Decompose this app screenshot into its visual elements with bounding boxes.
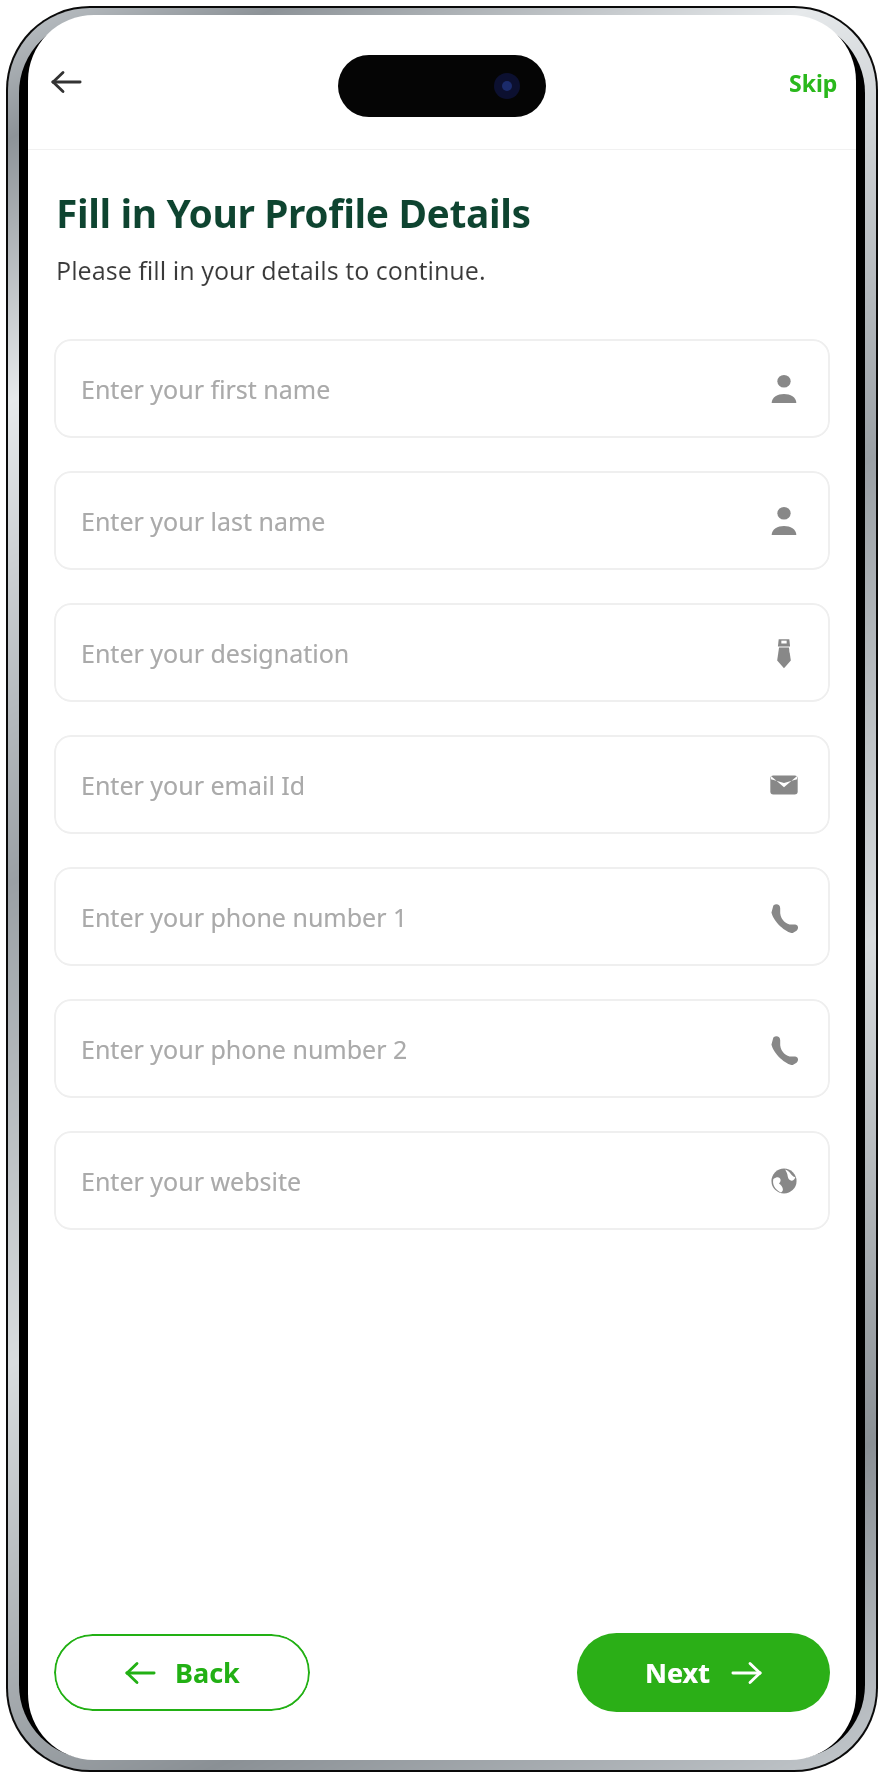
staticText: Skip xyxy=(789,67,838,98)
button[interactable]: Enter your first name xyxy=(54,339,830,438)
button[interactable]: Skip xyxy=(779,61,848,104)
button[interactable]: Back xyxy=(38,54,94,110)
staticText: Enter your phone number 2 xyxy=(81,1032,765,1066)
button[interactable]: Back xyxy=(54,1634,310,1711)
staticText: Enter your first name xyxy=(81,372,765,406)
button[interactable]: Next xyxy=(577,1633,830,1712)
staticText: Enter your designation xyxy=(81,636,765,670)
staticText: Enter your phone number 1 xyxy=(81,900,765,934)
button[interactable]: Enter your designation xyxy=(54,603,830,702)
staticText: Enter your website xyxy=(81,1164,765,1198)
staticText: Next xyxy=(645,1654,710,1691)
button[interactable]: Enter your phone number 1 xyxy=(54,867,830,966)
staticText: Enter your email Id xyxy=(81,768,765,802)
staticText: Enter your last name xyxy=(81,504,765,538)
staticText: Fill in Your Profile Details xyxy=(56,186,531,239)
staticText: Back xyxy=(175,1654,240,1691)
button[interactable]: Enter your last name xyxy=(54,471,830,570)
staticText: Please fill in your details to continue. xyxy=(56,253,486,287)
button[interactable]: Enter your website xyxy=(54,1131,830,1230)
button[interactable]: Enter your email Id xyxy=(54,735,830,834)
button[interactable]: Enter your phone number 2 xyxy=(54,999,830,1098)
